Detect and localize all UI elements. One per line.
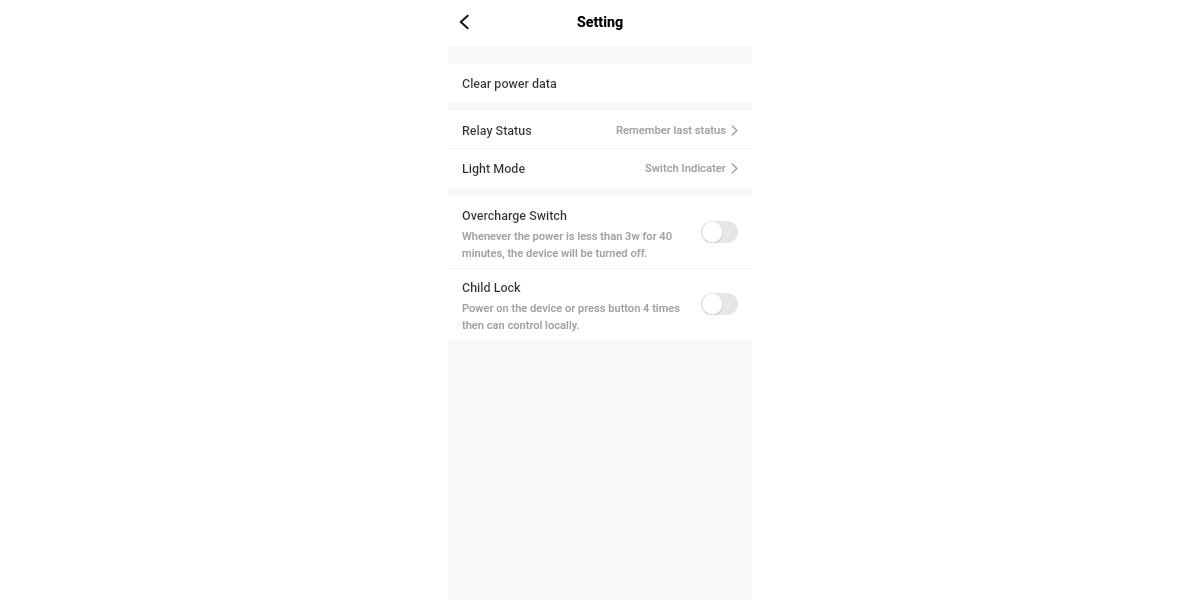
staticText: Overcharge Switch <box>462 208 567 223</box>
button[interactable]: Back <box>448 6 482 40</box>
staticText: Clear power data <box>462 76 557 91</box>
staticText: Light Mode <box>462 161 526 176</box>
staticText: Remember last status <box>616 124 726 137</box>
button[interactable]: Light Mode <box>448 149 752 187</box>
button[interactable]: Toggle Child Lock <box>701 293 738 315</box>
staticText: Relay Status <box>462 123 532 138</box>
staticText: Switch Indicater <box>645 162 726 175</box>
staticText: Setting <box>577 14 624 31</box>
button[interactable]: Overcharge Switch <box>448 197 752 269</box>
button[interactable]: Relay Status <box>448 111 752 149</box>
staticText: Child Lock <box>462 280 521 295</box>
staticText: Power on the device or press button 4 ti… <box>462 302 686 332</box>
button[interactable]: Toggle Overcharge Switch <box>701 221 738 243</box>
staticText: Setting <box>577 14 624 31</box>
staticText: Whenever the power is less than 3w for 4… <box>462 230 686 260</box>
button[interactable]: Child Lock <box>448 269 752 341</box>
button[interactable]: Clear power data <box>448 64 752 102</box>
